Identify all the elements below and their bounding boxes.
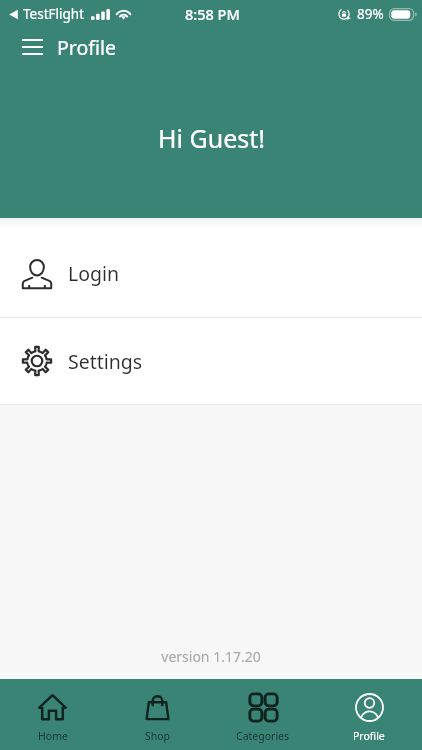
staticText: Categories	[236, 729, 290, 743]
staticText: 89%	[357, 5, 384, 23]
staticText: Login	[68, 260, 120, 287]
staticText: Settings	[68, 348, 143, 375]
button[interactable]: Open navigation menu	[10, 28, 54, 66]
staticText: 8:58 PM	[185, 4, 240, 24]
button[interactable]: Categories	[210, 687, 316, 743]
button[interactable]: Profile	[316, 687, 422, 743]
button[interactable]: Shop	[105, 687, 210, 743]
staticText: Home	[38, 729, 68, 743]
button[interactable]: Home	[0, 687, 105, 743]
button[interactable]: Login	[0, 230, 422, 317]
staticText: Profile	[57, 34, 117, 61]
button[interactable]: Settings	[0, 318, 422, 404]
staticText: TestFlight	[23, 5, 85, 23]
staticText: Profile	[353, 729, 385, 743]
staticText: Shop	[145, 729, 171, 743]
staticText: Hi Guest!	[158, 121, 265, 155]
staticText: version 1.17.20	[0, 647, 422, 666]
